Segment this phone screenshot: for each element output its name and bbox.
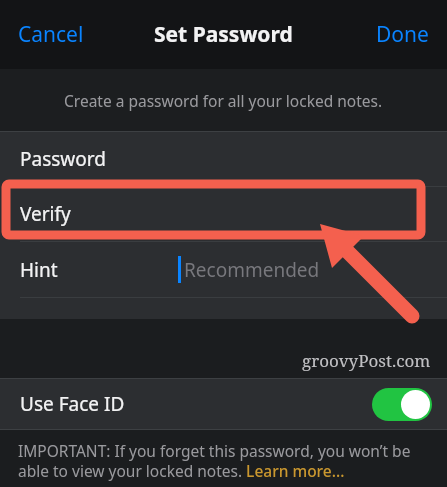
staticText: groovyPost.com — [302, 349, 431, 372]
button[interactable]: Cancel — [8, 14, 94, 55]
button[interactable]: Use Face ID toggle, on — [372, 388, 432, 421]
staticText: Recommended — [184, 257, 320, 283]
button[interactable]: Password — [0, 132, 447, 186]
button[interactable]: Done — [366, 14, 439, 55]
staticText: IMPORTANT: If you forget this password, … — [18, 440, 429, 482]
staticText: Hint — [20, 257, 58, 283]
button[interactable]: Verify — [0, 187, 447, 241]
button[interactable]: Hint — [0, 242, 447, 297]
staticText: Verify — [20, 201, 71, 227]
staticText: Password — [20, 146, 106, 172]
staticText: Use Face ID — [20, 391, 125, 417]
staticText: Set Password — [154, 20, 293, 49]
staticText: Done — [376, 20, 429, 49]
staticText: Create a password for all your locked no… — [64, 90, 383, 111]
button[interactable]: Use Face ID — [0, 379, 447, 429]
staticText: Cancel — [18, 20, 84, 49]
